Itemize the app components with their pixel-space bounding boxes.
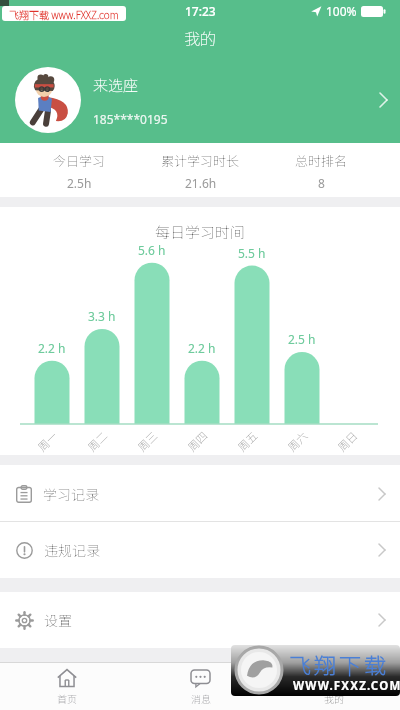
staticText: 185****0195 [93,111,168,127]
staticText: 2.2 h [188,340,216,356]
staticText: 3.3 h [88,308,116,324]
staticText: 周一 [34,428,60,454]
staticText: 设置 [44,610,72,630]
staticText: 21.6h [185,175,217,191]
staticText: 周四 [184,428,210,454]
staticText: 周五 [234,428,260,454]
staticText: 今日学习 [53,151,106,170]
staticText: 周日 [334,428,360,454]
button[interactable]: 首页 [0,663,134,710]
button[interactable]: 累计学习时长 [140,143,261,197]
button[interactable]: 今日学习 [18,143,140,197]
staticText: 违规记录 [44,540,100,560]
staticText: 学习记录 [43,484,99,504]
staticText: 周六 [284,428,310,454]
staticText: 100% [326,3,357,19]
staticText: 我的 [324,691,344,705]
staticText: 8 [318,175,325,191]
staticText: 5.5 h [238,245,266,261]
staticText: 2.5h [67,175,92,191]
staticText: 飞翔下载 [289,648,390,680]
staticText: 首页 [57,691,77,705]
button[interactable]: 来选座 [0,67,400,133]
staticText: 我的 [184,26,217,49]
button[interactable]: 消息 [134,663,267,710]
staticText: 总时排名 [295,151,348,170]
staticText: 每日学习时间 [155,221,246,243]
staticText: 5.6 h [138,242,166,258]
staticText: 2.2 h [38,340,66,356]
button[interactable]: 违规记录 [0,522,400,578]
staticText: WWW.FXXZ.COM [293,678,400,694]
button[interactable]: 设置 [0,592,400,648]
button[interactable]: 我的 [267,663,400,710]
staticText: 周三 [134,428,160,454]
staticText: 2.5 h [288,331,316,347]
staticText: 累计学习时长 [161,151,240,170]
button[interactable]: 总时排名 [261,143,382,197]
button[interactable]: 学习记录 [0,465,400,522]
staticText: 来选座 [93,74,139,96]
staticText: 周二 [84,428,110,454]
staticText: 飞翔下载 www.FXXZ.com [9,7,119,21]
staticText: 17:23 [185,3,216,19]
staticText: 消息 [191,691,211,705]
